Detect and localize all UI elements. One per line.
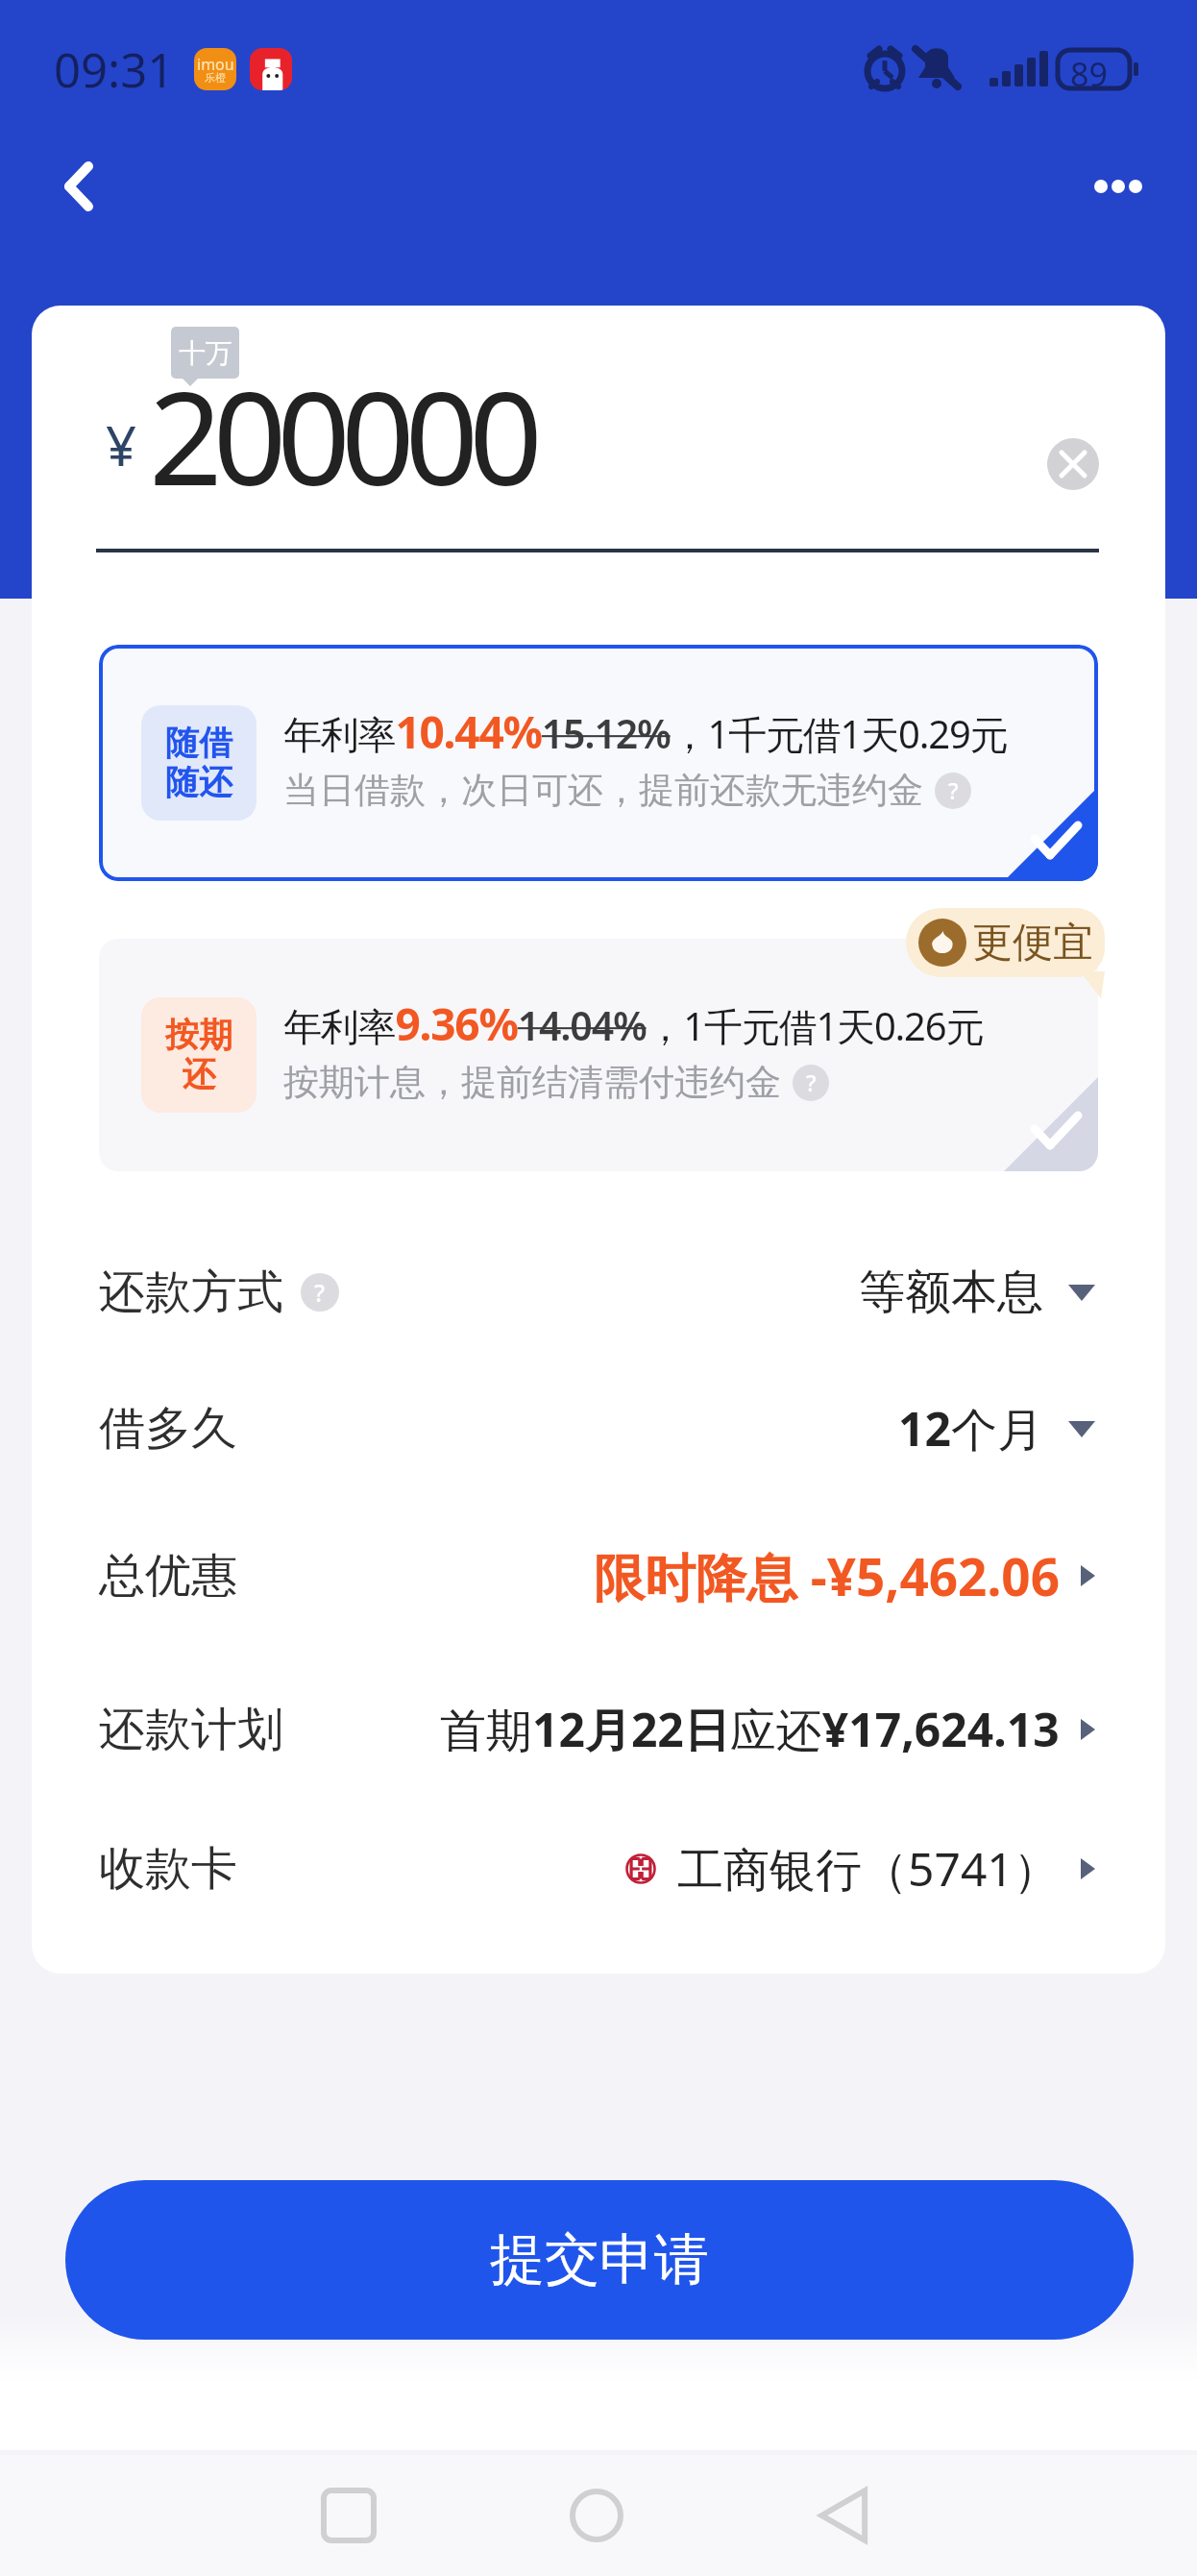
button[interactable]: Back xyxy=(793,2455,898,2576)
staticText: imou xyxy=(197,54,234,75)
staticText: ? xyxy=(314,1276,326,1309)
staticText: 收款卡 xyxy=(99,1840,237,1898)
staticText: 还款方式 xyxy=(99,1263,283,1321)
button[interactable]: 收款卡 xyxy=(32,1798,1165,1940)
staticText: 十万 xyxy=(179,336,232,370)
staticText: 89 xyxy=(1070,52,1108,96)
button[interactable]: 还款方式 xyxy=(32,1221,1165,1363)
staticText: 随借 随还 xyxy=(165,722,232,804)
staticText: 年利率10.44%15.12%，1千元借1天0.29元 xyxy=(283,701,1008,762)
staticText: 更便宜 xyxy=(972,918,1093,969)
staticText: 12个月 xyxy=(898,1397,1043,1460)
staticText: 限时降息 -¥5,462.06 xyxy=(594,1541,1060,1610)
button[interactable]: 提交申请 xyxy=(65,2180,1134,2340)
staticText: 还款计划 xyxy=(99,1701,283,1758)
button[interactable]: 还款计划 xyxy=(32,1658,1165,1801)
staticText: 首期12月22日应还¥17,624.13 xyxy=(440,1698,1060,1761)
staticText: 工商银行（5741） xyxy=(677,1837,1060,1901)
button[interactable]: 按期 还 xyxy=(99,939,1098,1171)
staticText: 总优惠 xyxy=(99,1547,237,1605)
button[interactable]: 总优惠 xyxy=(32,1505,1165,1647)
staticText: 年利率9.36%14.04%，1千元借1天0.26元 xyxy=(283,994,984,1054)
button[interactable]: More options xyxy=(1073,141,1163,232)
staticText: 按期 还 xyxy=(165,1014,232,1096)
button[interactable]: 借多久 xyxy=(32,1358,1165,1500)
button[interactable]: Recents xyxy=(296,2455,402,2576)
button[interactable]: Home xyxy=(544,2455,649,2576)
button[interactable]: Clear xyxy=(1047,438,1099,490)
staticText: 09:31 xyxy=(54,37,175,102)
staticText: 乐橙 xyxy=(205,71,226,85)
staticText: 当日借款，次日可还，提前还款无违约金 xyxy=(283,768,923,813)
staticText: 等额本息 xyxy=(859,1263,1043,1321)
staticText: 提交申请 xyxy=(490,2225,709,2294)
staticText: 按期计息，提前结清需付违约金 xyxy=(283,1060,781,1105)
staticText: ? xyxy=(948,775,959,806)
button[interactable]: Back xyxy=(33,140,125,233)
staticText: ¥ xyxy=(106,408,137,481)
button[interactable]: 随借 随还 xyxy=(99,645,1098,881)
staticText: ? xyxy=(806,1067,817,1098)
staticText: 200000 xyxy=(149,348,533,524)
staticText: 借多久 xyxy=(99,1400,237,1458)
